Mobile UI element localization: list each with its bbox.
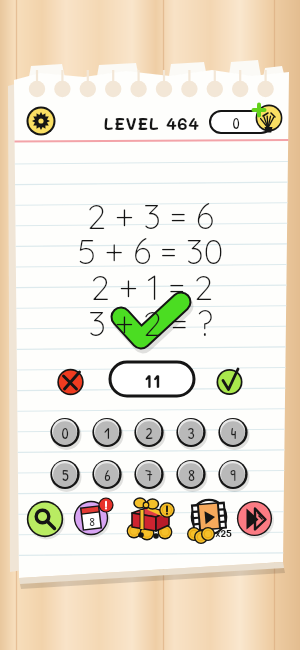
button[interactable]: Daily calendar: [74, 500, 110, 536]
staticText: 2 + 3 = 6: [87, 195, 214, 238]
staticText: 9: [230, 464, 236, 486]
button[interactable]: Key 5: [50, 459, 81, 490]
staticText: 6: [104, 464, 111, 486]
button[interactable]: Gift: [130, 500, 172, 540]
button[interactable]: Hint: [206, 108, 288, 138]
button[interactable]: Answer field: [108, 364, 192, 398]
button[interactable]: Watch video: [184, 500, 226, 540]
staticText: LEVEL 464: [103, 112, 200, 134]
button[interactable]: Key 2: [134, 417, 165, 448]
button[interactable]: Settings: [24, 104, 58, 138]
staticText: 2 + 1 = 2: [91, 266, 213, 309]
button[interactable]: Key 6: [92, 459, 123, 490]
button[interactable]: Skip level: [237, 500, 273, 536]
staticText: 0: [61, 422, 69, 444]
button[interactable]: Key 3: [176, 417, 207, 448]
staticText: x25: [215, 526, 232, 539]
staticText: 3 + 2 = ?: [88, 302, 213, 345]
staticText: 5 + 6 = 30: [77, 230, 224, 273]
staticText: 1: [104, 422, 110, 444]
button[interactable]: Key 0: [50, 417, 81, 448]
button[interactable]: Key 1: [92, 417, 123, 448]
button[interactable]: Key 4: [218, 417, 249, 448]
staticText: 2: [145, 422, 153, 444]
button[interactable]: Submit: [216, 369, 242, 395]
staticText: 4: [230, 422, 237, 444]
button[interactable]: Clear: [58, 369, 84, 395]
staticText: 3: [187, 422, 195, 444]
button[interactable]: Key 7: [134, 459, 165, 490]
staticText: 8: [188, 464, 195, 486]
staticText: 7: [145, 464, 153, 486]
button[interactable]: Key 9: [218, 459, 249, 490]
button[interactable]: Search: [31, 500, 67, 536]
staticText: 0: [232, 112, 240, 134]
button[interactable]: Key 8: [176, 459, 207, 490]
staticText: 11: [144, 368, 161, 393]
staticText: 8: [89, 512, 95, 530]
staticText: 5: [62, 464, 69, 486]
